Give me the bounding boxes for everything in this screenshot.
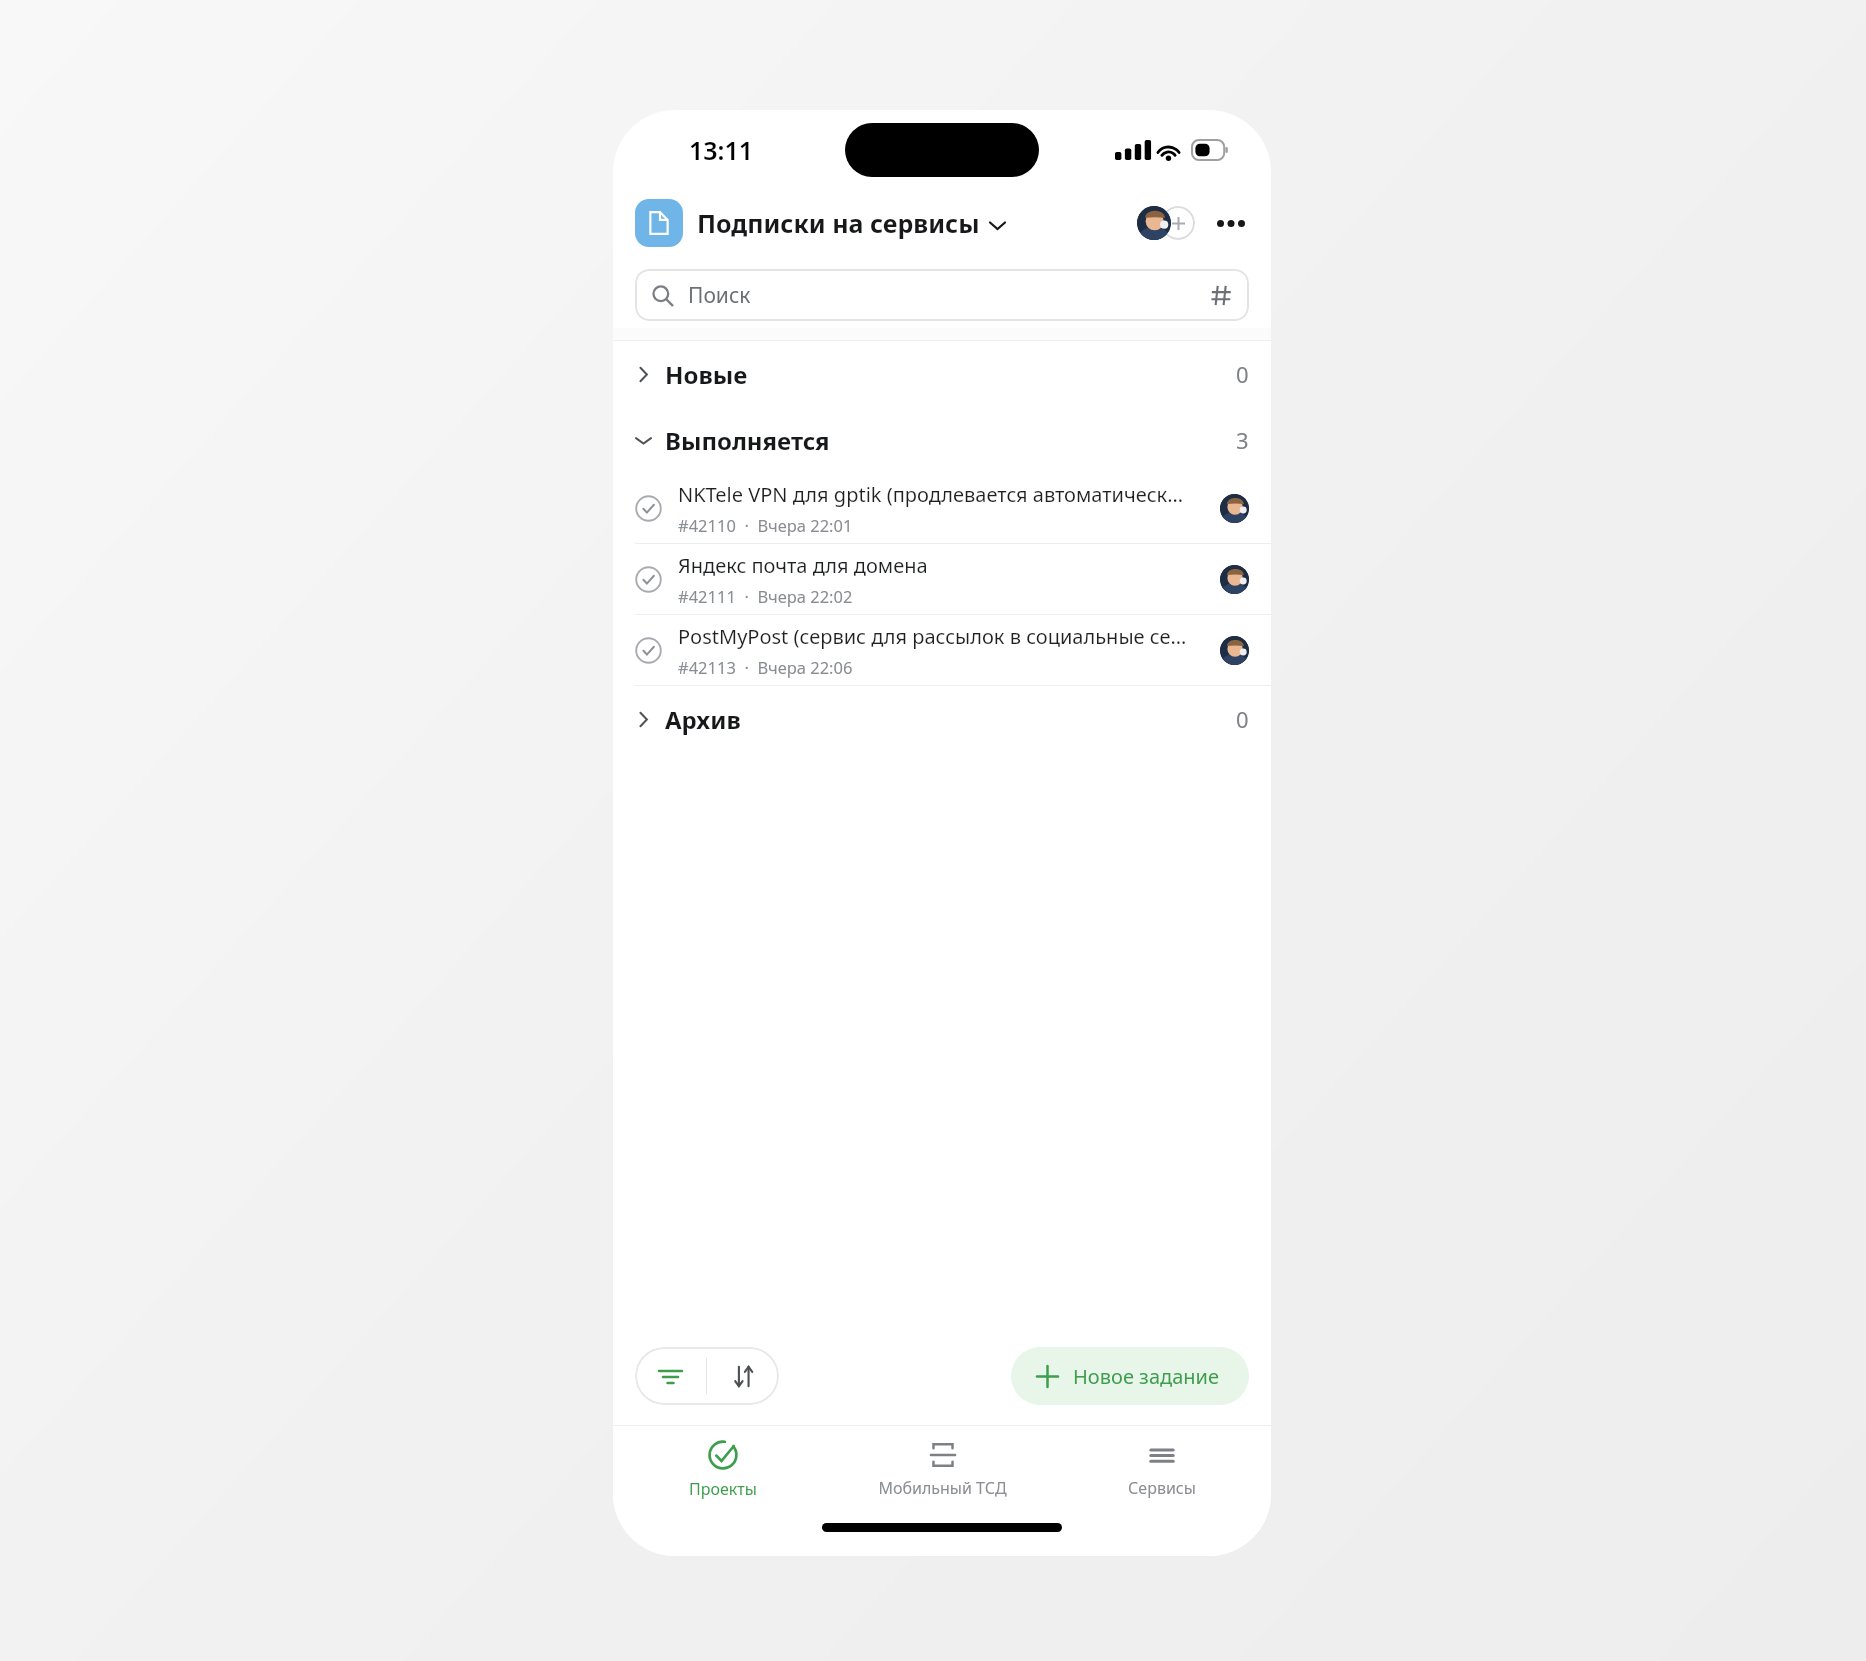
staticText: 3 (1236, 425, 1249, 455)
staticText: NKTele VPN для gptik (продлевается автом… (678, 481, 1184, 508)
button[interactable]: NKTele VPN для gptik (продлевается автом… (613, 473, 1271, 543)
button[interactable]: Новое задание (1011, 1347, 1249, 1405)
button[interactable]: PostMyPost (сервис для рассылок в социал… (613, 615, 1271, 685)
staticText: Новые (665, 358, 748, 391)
staticText: #42113 · Вчера 22:06 (678, 656, 853, 678)
button[interactable]: Новые (613, 341, 1271, 407)
staticText: #42110 · Вчера 22:01 (678, 514, 853, 536)
button[interactable]: Сервисы (1052, 1426, 1271, 1514)
staticText: 13:11 (689, 133, 754, 167)
button[interactable]: Яндекс почта для домена (613, 544, 1271, 614)
staticText: Сервисы (1128, 1477, 1196, 1499)
staticText: Проекты (689, 1478, 757, 1500)
button[interactable]: Участники (1137, 204, 1195, 242)
staticText: Подписки на сервисы (697, 206, 980, 240)
staticText: 0 (1236, 359, 1249, 389)
staticText: PostMyPost (сервис для рассылок в социал… (678, 623, 1187, 650)
staticText: Мобильный ТСД (878, 1477, 1007, 1499)
button[interactable]: Сортировка (707, 1347, 779, 1405)
button[interactable]: Фильтр (635, 1347, 706, 1405)
staticText: Архив (665, 703, 741, 736)
button[interactable]: Ещё (1213, 205, 1249, 241)
button[interactable]: Проект (635, 199, 683, 247)
button[interactable]: Выполняется (613, 407, 1271, 473)
staticText: Новое задание (1073, 1363, 1219, 1390)
button[interactable]: Архив (613, 686, 1271, 752)
staticText: Поиск (688, 281, 751, 310)
staticText: Яндекс почта для домена (678, 552, 928, 579)
button[interactable]: Поиск (635, 269, 1249, 321)
staticText: Выполняется (665, 424, 830, 457)
button[interactable]: Проекты (613, 1426, 833, 1514)
staticText: 0 (1236, 704, 1249, 734)
staticText: #42111 · Вчера 22:02 (678, 585, 853, 607)
button[interactable]: Мобильный ТСД (833, 1426, 1052, 1514)
button[interactable]: Подписки на сервисы (697, 206, 1005, 240)
